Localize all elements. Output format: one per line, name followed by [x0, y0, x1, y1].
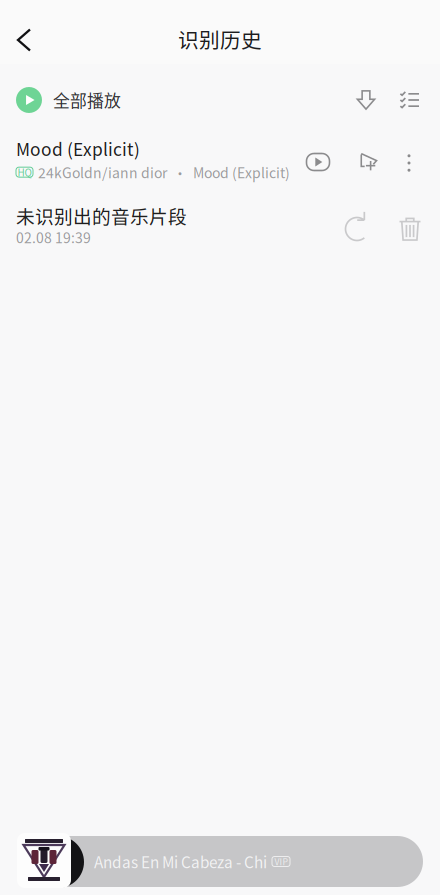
button[interactable]: Add to playlist: [347, 139, 391, 183]
button[interactable]: Download all: [346, 79, 386, 120]
staticText: 24kGoldn/iann dior · Mood (Explicit): [38, 162, 290, 182]
staticText: 未识别出的音乐片段: [16, 202, 187, 229]
button[interactable]: More options: [390, 141, 428, 185]
button[interactable]: 全部播放: [0, 76, 121, 124]
button[interactable]: Album art: [17, 833, 71, 888]
button[interactable]: Retry recognition: [334, 206, 380, 252]
staticText: 02.08 19:39: [16, 227, 91, 247]
staticText: Andas En Mi Cabeza - Chi: [94, 850, 267, 873]
staticText: 全部播放: [53, 88, 121, 112]
staticText: Mood (Explicit): [16, 136, 140, 161]
button[interactable]: Multi-select: [386, 80, 440, 120]
button[interactable]: Delete: [388, 206, 432, 252]
button[interactable]: Now playing: Andas En Mi Cabeza: [20, 836, 423, 887]
staticText: HQ: [17, 165, 31, 179]
staticText: 识别历史: [178, 24, 262, 54]
button[interactable]: Back: [0, 0, 49, 63]
button[interactable]: Play music video: [296, 140, 340, 184]
staticText: VIP: [274, 855, 287, 868]
